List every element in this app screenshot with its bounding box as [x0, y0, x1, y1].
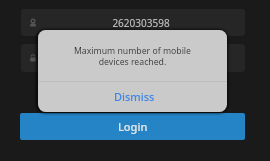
- other: User: [27, 17, 39, 29]
- button[interactable]: Login: [20, 113, 245, 140]
- staticText: Dismiss: [114, 89, 155, 104]
- other: Password: [27, 52, 39, 64]
- button[interactable]: User: [21, 9, 245, 36]
- button[interactable]: Password: [21, 44, 245, 72]
- staticText: Login: [118, 119, 148, 134]
- staticText: Maximum number of mobile devices reached…: [68, 45, 197, 68]
- button[interactable]: Dismiss: [38, 81, 227, 112]
- staticText: 2620303598: [37, 16, 245, 30]
